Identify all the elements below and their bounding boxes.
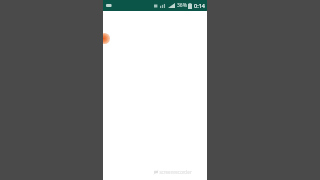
staticText: 0:14 (194, 2, 205, 9)
staticText: 36% (177, 2, 187, 9)
staticText: screenrecorder (159, 169, 192, 175)
button[interactable]: Loading indicator (103, 33, 110, 44)
